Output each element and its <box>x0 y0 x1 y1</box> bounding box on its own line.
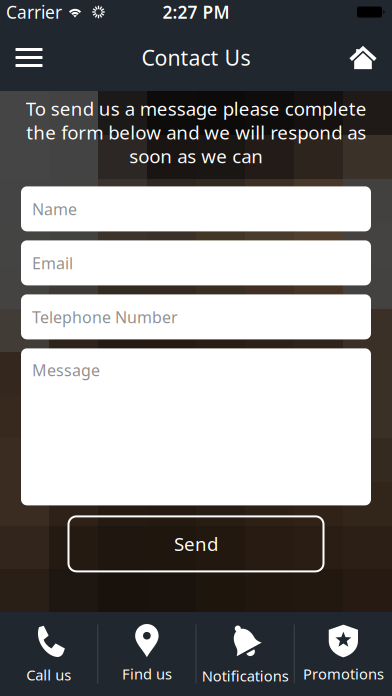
button[interactable]: Menu <box>0 24 58 91</box>
button[interactable]: Home <box>334 24 392 91</box>
button[interactable]: Call us <box>0 612 97 696</box>
button[interactable]: Telephone Number <box>21 294 371 339</box>
button[interactable]: Name <box>21 186 371 231</box>
button[interactable]: Message <box>21 348 371 505</box>
button[interactable]: Send <box>68 516 323 571</box>
staticText: Telephone Number <box>32 306 178 328</box>
staticText: Email <box>32 252 73 274</box>
staticText: To send us a message please complete the… <box>25 96 366 168</box>
button[interactable]: Email <box>21 240 371 285</box>
staticText: Promotions <box>303 664 384 683</box>
button[interactable]: Promotions <box>295 612 392 696</box>
staticText: Message <box>32 359 100 381</box>
staticText: Contact Us <box>141 43 250 72</box>
button[interactable]: Notifications <box>196 612 294 696</box>
staticText: Send <box>174 531 218 556</box>
staticText: Name <box>32 198 77 220</box>
staticText: 2:27 PM <box>162 0 229 23</box>
staticText: Carrier <box>6 0 62 23</box>
staticText: Notifications <box>202 666 289 685</box>
staticText: Call us <box>26 665 71 684</box>
button[interactable]: Find us <box>98 612 195 696</box>
staticText: Find us <box>122 664 172 683</box>
